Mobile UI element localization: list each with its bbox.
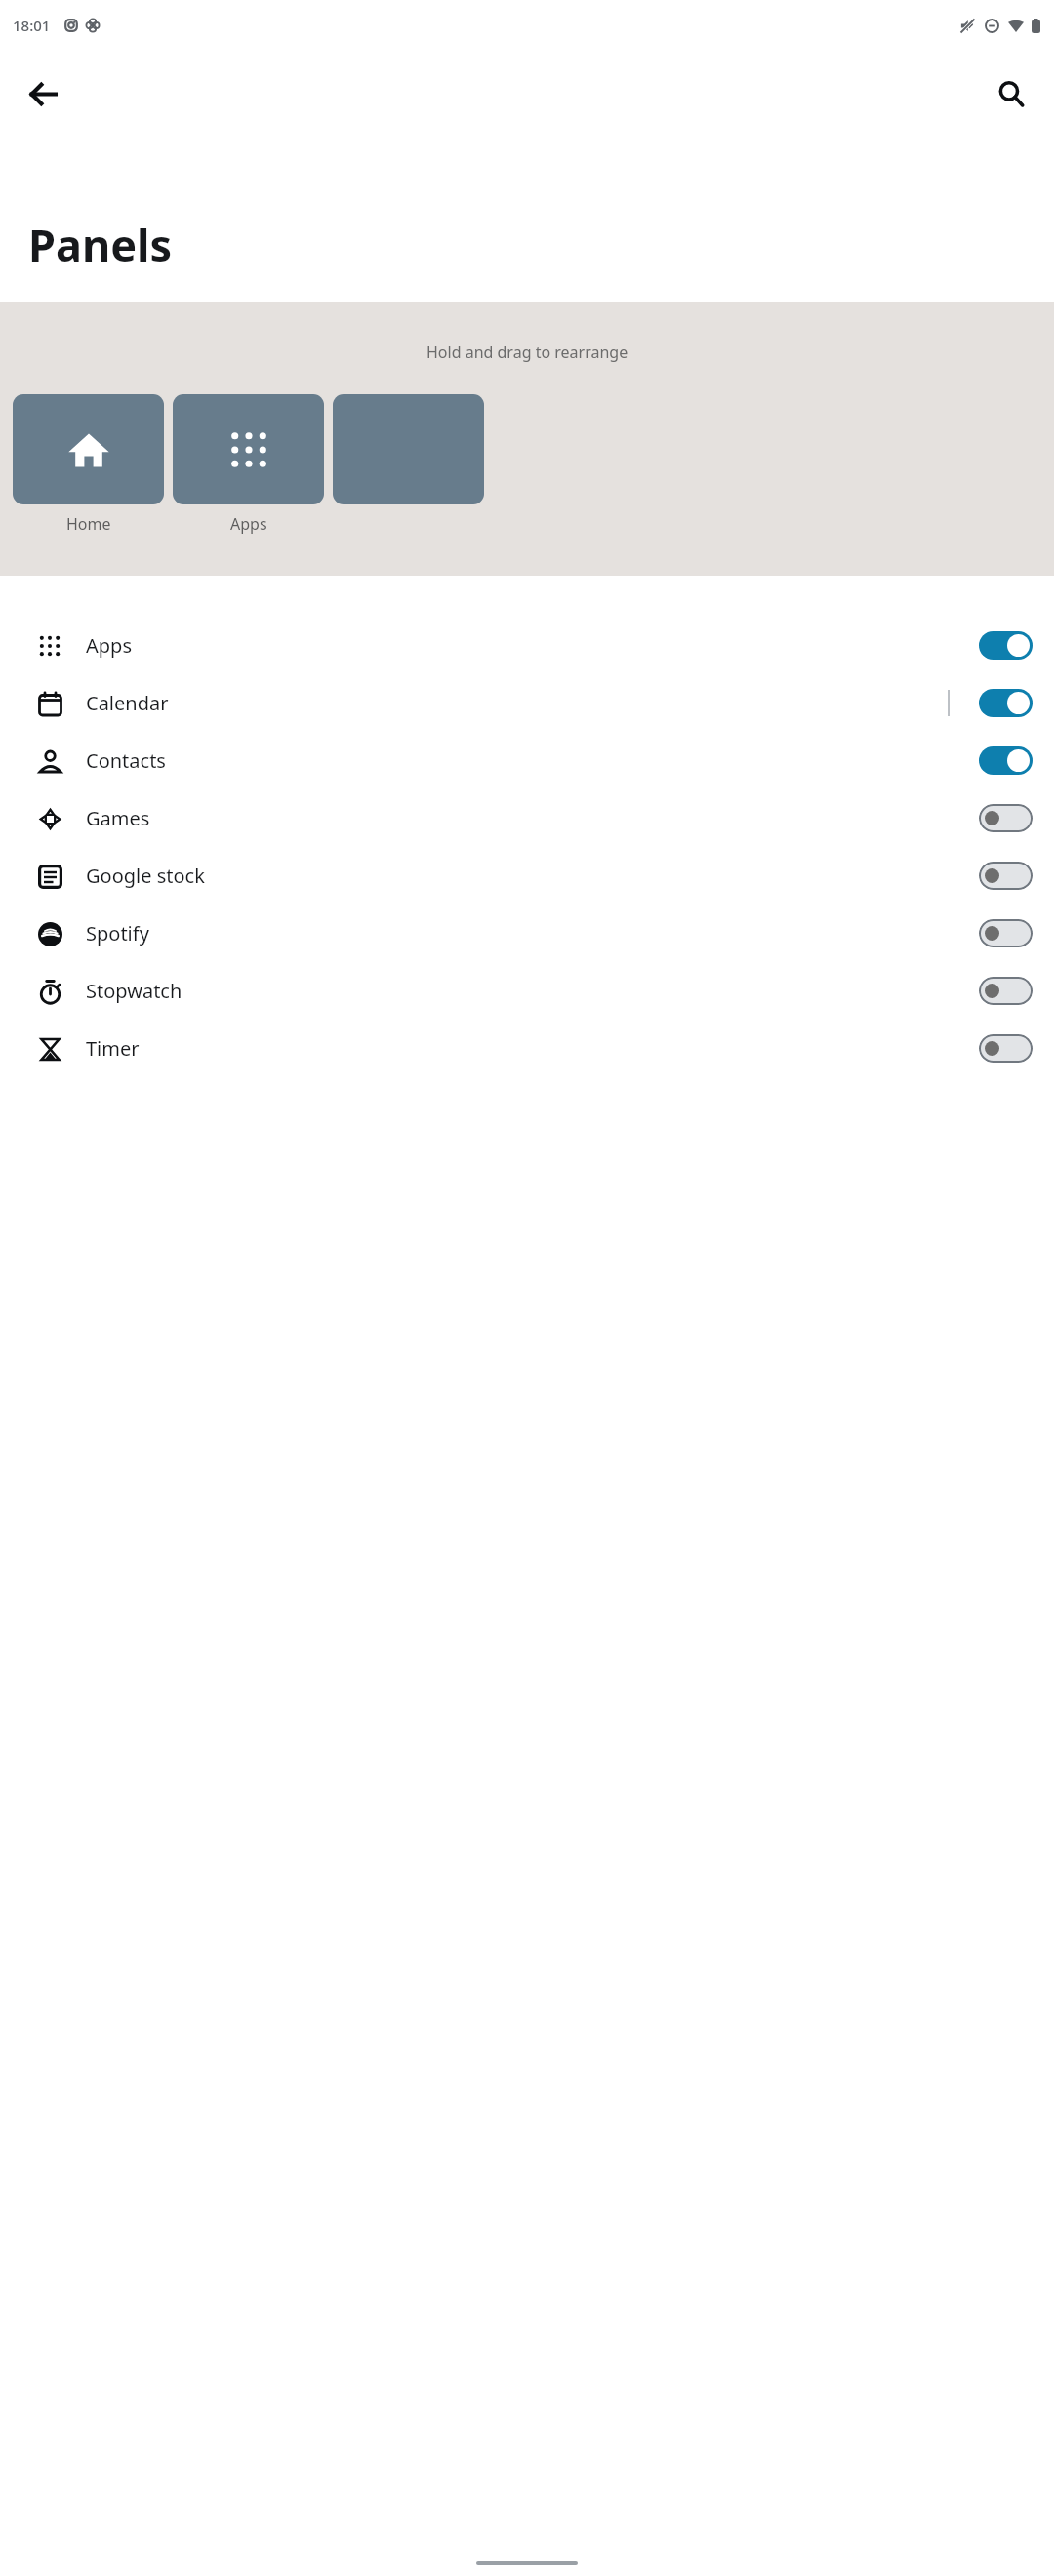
staticText: Spotify <box>86 920 149 946</box>
staticText: Panels <box>28 215 173 274</box>
button[interactable]: Back <box>14 64 72 123</box>
button[interactable] <box>979 862 1033 890</box>
button[interactable] <box>979 746 1033 775</box>
staticText: Hold and drag to rearrange <box>426 342 628 363</box>
staticText: Home <box>66 513 111 535</box>
button[interactable]: Home <box>13 394 164 504</box>
button[interactable]: Stopwatch <box>0 962 1054 1020</box>
button[interactable]: Games <box>0 789 1054 847</box>
button[interactable]: Apps <box>173 394 324 504</box>
staticText: Calendar <box>86 690 169 716</box>
button[interactable]: Search <box>982 64 1040 123</box>
button[interactable]: Apps <box>0 617 1054 674</box>
button[interactable] <box>333 394 484 504</box>
button[interactable]: Spotify <box>0 905 1054 962</box>
staticText: Apps <box>86 632 132 659</box>
staticText: Contacts <box>86 747 166 774</box>
button[interactable]: Calendar <box>0 674 1054 732</box>
button[interactable] <box>979 631 1033 660</box>
button[interactable]: Timer <box>0 1020 1054 1077</box>
staticText: Google stock <box>86 863 205 889</box>
staticText: 18:01 <box>13 16 51 35</box>
button[interactable] <box>979 919 1033 947</box>
button[interactable]: Contacts <box>0 732 1054 789</box>
button[interactable] <box>979 689 1033 717</box>
staticText: Apps <box>230 513 267 535</box>
button[interactable]: Google stock <box>0 847 1054 905</box>
staticText: Timer <box>86 1035 140 1062</box>
staticText: Games <box>86 805 150 831</box>
button[interactable] <box>979 1034 1033 1063</box>
button[interactable] <box>979 977 1033 1005</box>
staticText: Stopwatch <box>86 978 182 1004</box>
button[interactable] <box>979 804 1033 832</box>
